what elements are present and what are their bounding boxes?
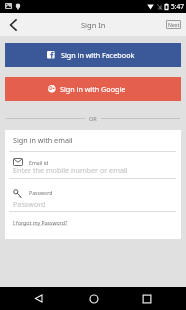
staticText: 5:47 [171,2,184,11]
staticText: Password [13,199,46,209]
staticText: Enter the mobile number or email [13,165,128,175]
button[interactable]: Back [0,13,26,36]
button[interactable]: Back [22,287,55,310]
staticText: Sign in with Google [60,84,126,94]
staticText: Sign in with Facebook [61,50,135,60]
button[interactable]: Recent apps [130,287,163,310]
staticText: Sign In [81,20,106,30]
button[interactable]: I forgot my Password? [13,219,68,226]
staticText: I forgot my Password? [13,219,68,226]
button[interactable]: Sign in with Google [5,77,181,101]
button[interactable]: Next [166,20,181,29]
button[interactable]: Email id [5,154,181,177]
button[interactable]: Home [77,287,110,310]
button[interactable]: Password [5,185,181,208]
button[interactable]: Sign in with Facebook [5,43,181,67]
staticText: Email id [29,159,49,166]
staticText: Password [29,189,53,196]
staticText: OR [89,115,97,123]
staticText: Next [168,21,180,28]
staticText: Sign in with email [13,135,73,145]
